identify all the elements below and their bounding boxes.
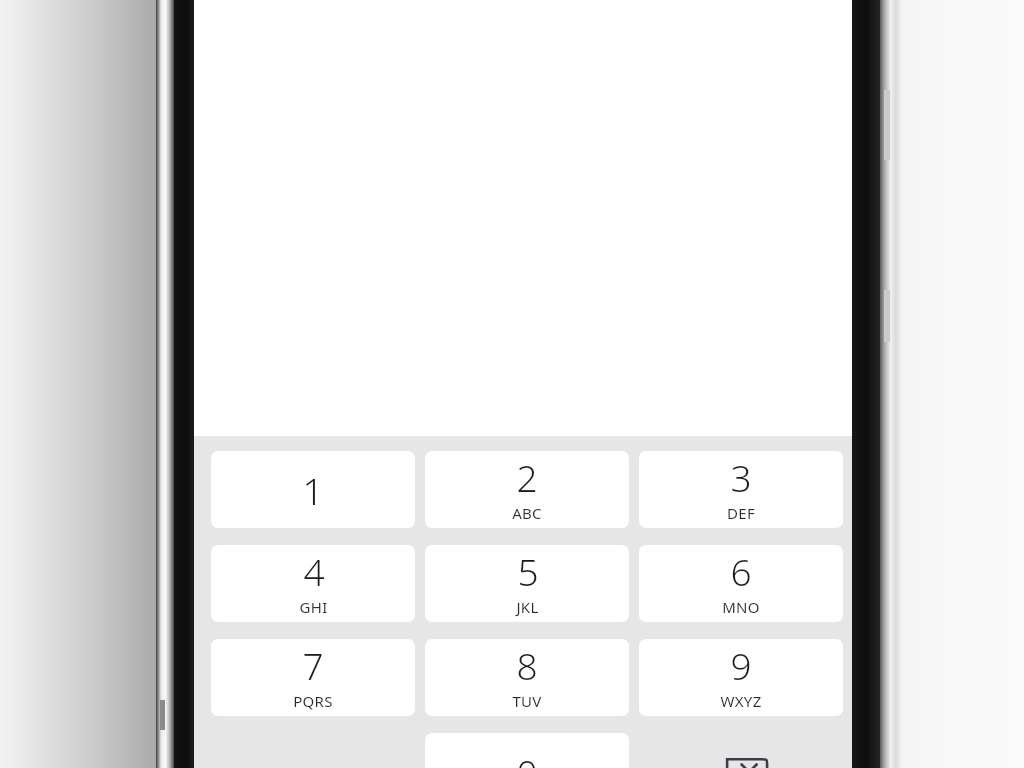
button[interactable]: 9 [639, 639, 843, 716]
staticText: 6 [730, 546, 752, 596]
button[interactable]: 8 [425, 639, 629, 716]
staticText: 0 [516, 747, 538, 768]
button[interactable]: 5 [425, 545, 629, 622]
button[interactable]: 2 [425, 451, 629, 528]
button[interactable]: 0 [425, 733, 629, 768]
staticText: 4 [303, 546, 325, 596]
staticText: 1 [302, 465, 324, 515]
button[interactable]: 6 [639, 545, 843, 622]
button[interactable]: 4 [211, 545, 415, 622]
staticText: GHI [299, 597, 328, 617]
staticText: WXYZ [720, 691, 762, 711]
staticText: ABC [512, 503, 542, 523]
staticText: DEF [727, 503, 755, 523]
staticText: PQRS [293, 691, 333, 711]
staticText: 8 [516, 640, 538, 690]
button[interactable]: 7 [211, 639, 415, 716]
staticText: 2 [516, 452, 538, 502]
staticText: MNO [722, 597, 760, 617]
staticText: 3 [730, 452, 752, 502]
staticText: 9 [730, 640, 752, 690]
staticText: 5 [517, 546, 539, 596]
button[interactable]: 3 [639, 451, 843, 528]
staticText: TUV [512, 691, 542, 711]
staticText: JKL [516, 597, 539, 617]
button[interactable]: Backspace [639, 733, 843, 768]
staticText: 7 [302, 640, 324, 690]
button[interactable]: 1 [211, 451, 415, 528]
